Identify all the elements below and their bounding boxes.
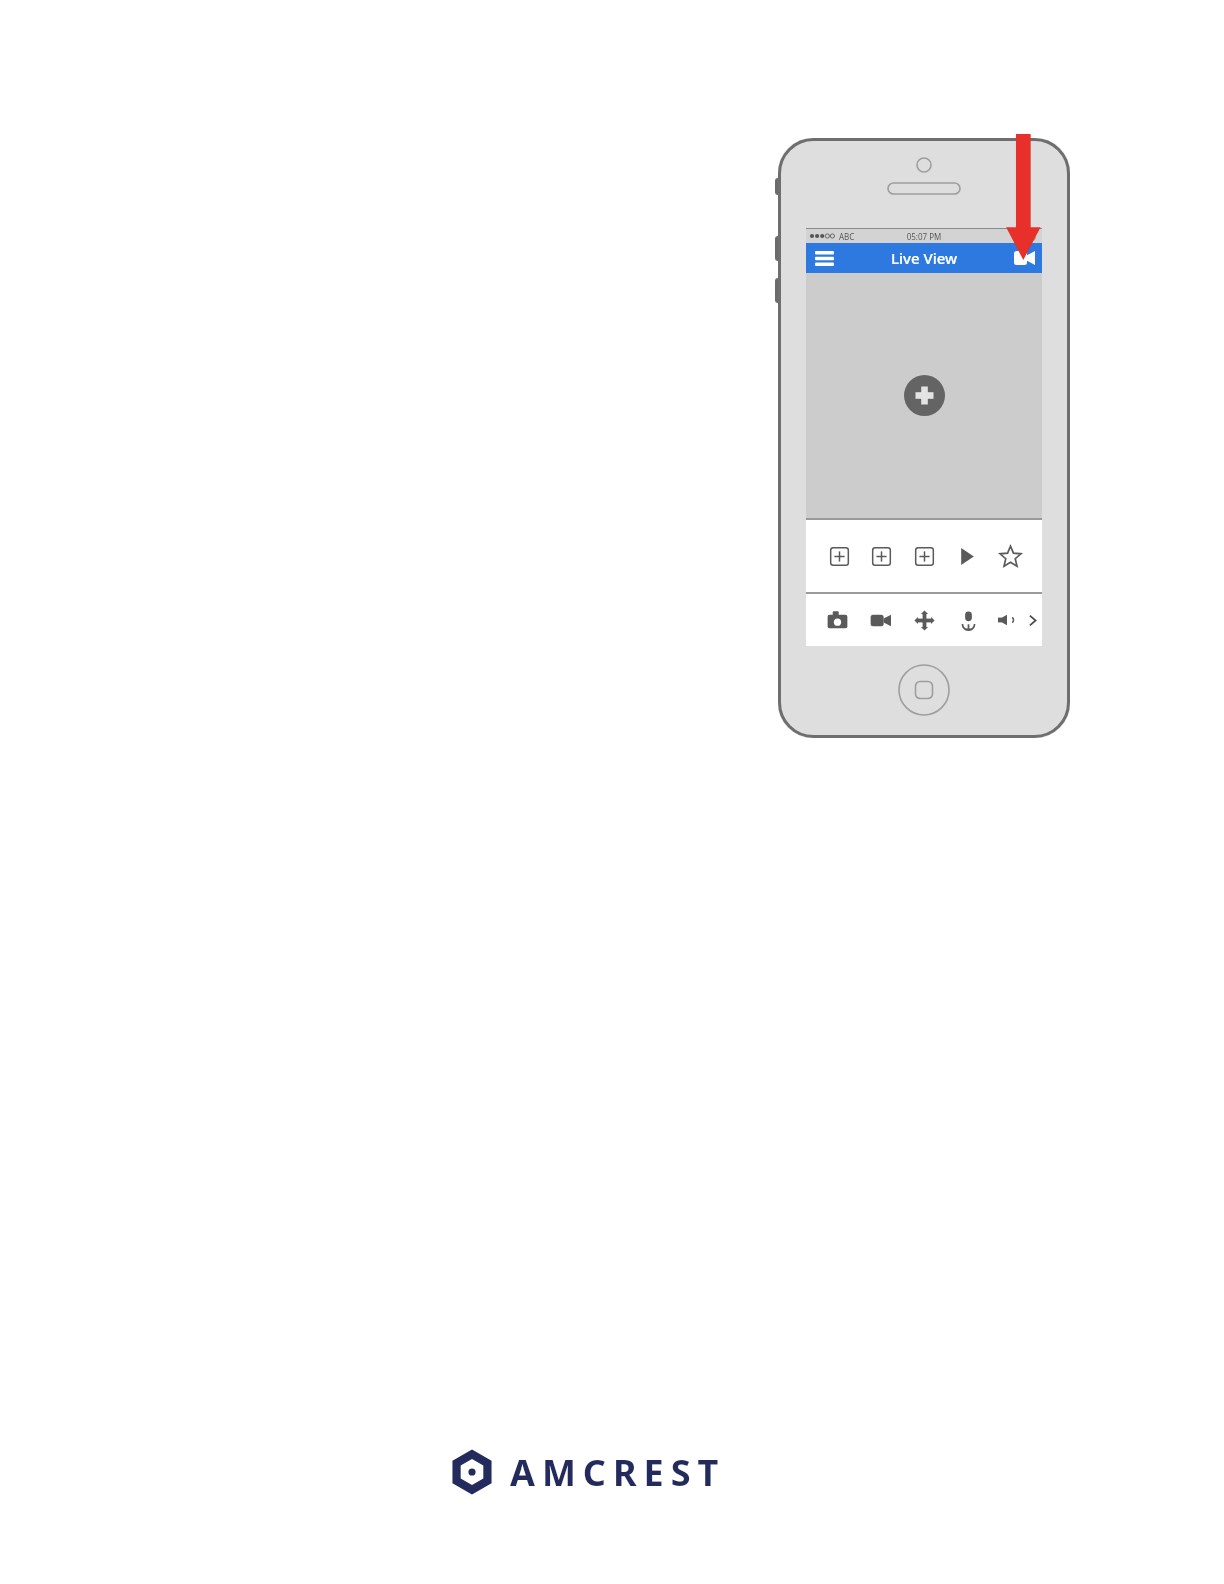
button[interactable]: Switch camera	[1011, 245, 1037, 271]
button[interactable]: Preset 3	[903, 520, 946, 592]
button[interactable]: Add device	[904, 375, 945, 416]
button[interactable]: Preset 2	[860, 520, 903, 592]
staticText: ABC	[839, 231, 855, 242]
staticText: Live View	[891, 248, 958, 268]
staticText: AMCREST	[510, 1448, 726, 1497]
button[interactable]: Talk	[946, 594, 990, 646]
button[interactable]: More	[1025, 594, 1040, 646]
button[interactable]: Audio	[990, 594, 1025, 646]
button[interactable]: Snapshot	[816, 594, 859, 646]
button[interactable]: Record	[859, 594, 902, 646]
button[interactable]: Favorite	[989, 520, 1032, 592]
button[interactable]: Play	[946, 520, 989, 592]
button[interactable]: Menu	[811, 245, 837, 271]
button[interactable]: Preset 1	[818, 520, 860, 592]
button[interactable]: Pan tilt	[902, 594, 946, 646]
staticText: 05:07 PM	[806, 231, 1042, 242]
